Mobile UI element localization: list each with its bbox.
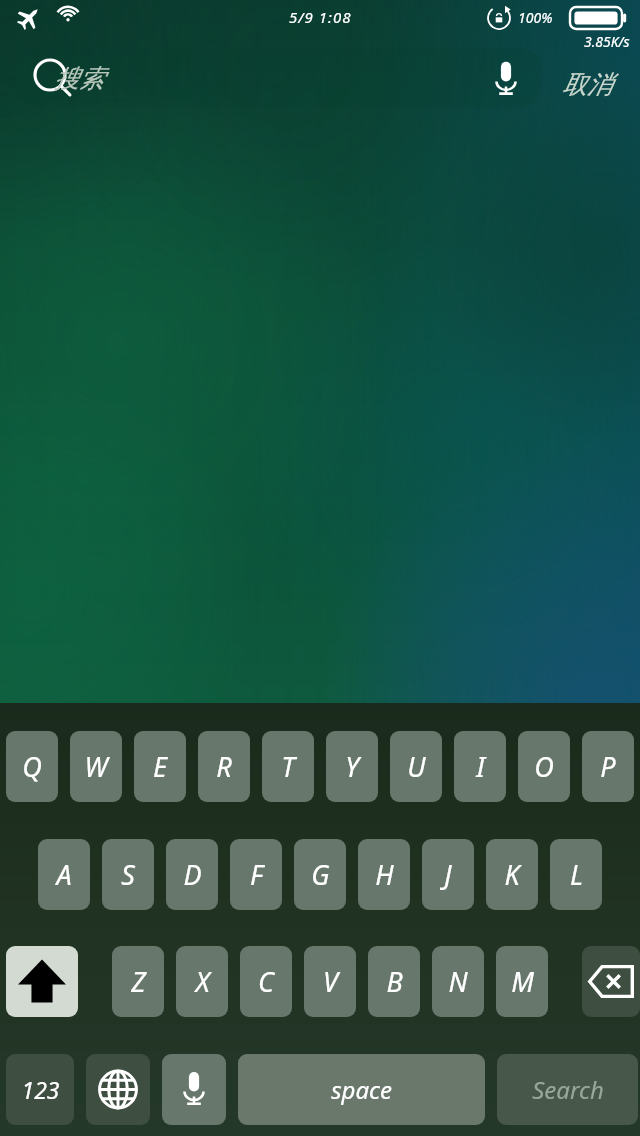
staticText: P [600, 748, 616, 785]
staticText: Y [345, 748, 359, 785]
button[interactable]: L [550, 839, 602, 910]
staticText: A [56, 856, 72, 893]
button[interactable]: Y [326, 731, 378, 802]
staticText: B [386, 963, 403, 1000]
staticText: X [195, 963, 210, 1000]
button[interactable]: D [166, 839, 218, 910]
staticText: M [511, 963, 534, 1000]
staticText: 123 [21, 1074, 60, 1105]
staticText: W [84, 748, 108, 785]
staticText: J [444, 856, 452, 893]
staticText: 3.85K/s [584, 32, 630, 51]
staticText: 搜索 [54, 63, 104, 94]
button[interactable]: A [38, 839, 90, 910]
button[interactable]: 搜索 [16, 48, 542, 108]
staticText: K [504, 856, 520, 893]
button[interactable]: G [294, 839, 346, 910]
button[interactable]: Z [112, 946, 164, 1017]
staticText: U [407, 748, 426, 785]
staticText: V [323, 963, 338, 1000]
staticText: E [153, 748, 167, 785]
staticText: D [183, 856, 202, 893]
staticText: Q [22, 748, 42, 785]
staticText: N [448, 963, 468, 1000]
staticText: H [375, 856, 394, 893]
button[interactable]: C [240, 946, 292, 1017]
staticText: R [216, 748, 232, 785]
button[interactable]: B [368, 946, 420, 1017]
button[interactable]: V [304, 946, 356, 1017]
button[interactable]: 取消 [542, 48, 632, 108]
staticText: Z [131, 963, 146, 1000]
button[interactable]: O [518, 731, 570, 802]
button[interactable]: Voice input [162, 1054, 226, 1125]
staticText: 100% [518, 8, 553, 27]
button[interactable]: P [582, 731, 634, 802]
staticText: space [331, 1073, 392, 1106]
button[interactable]: T [262, 731, 314, 802]
staticText: O [534, 748, 554, 785]
button[interactable]: W [70, 731, 122, 802]
staticText: I [476, 748, 485, 785]
staticText: 5/9 1:08 [289, 7, 352, 27]
button[interactable]: U [390, 731, 442, 802]
button[interactable]: space [238, 1054, 485, 1125]
button[interactable]: X [176, 946, 228, 1017]
staticText: G [311, 856, 330, 893]
button[interactable]: J [422, 839, 474, 910]
staticText: 取消 [562, 69, 612, 100]
button[interactable]: K [486, 839, 538, 910]
staticText: S [121, 856, 135, 893]
button[interactable]: Numbers and symbols [6, 1054, 74, 1125]
button[interactable]: H [358, 839, 410, 910]
button[interactable]: Backspace [582, 946, 640, 1017]
button[interactable]: M [496, 946, 548, 1017]
button[interactable]: S [102, 839, 154, 910]
button[interactable]: I [454, 731, 506, 802]
staticText: C [258, 963, 274, 1000]
button[interactable]: Search [497, 1054, 638, 1125]
button[interactable]: Shift [6, 946, 78, 1017]
staticText: T [281, 748, 295, 785]
button[interactable]: N [432, 946, 484, 1017]
button[interactable]: F [230, 839, 282, 910]
button[interactable]: Q [6, 731, 58, 802]
button[interactable]: R [198, 731, 250, 802]
staticText: F [250, 856, 263, 893]
staticText: L [570, 856, 583, 893]
button[interactable]: E [134, 731, 186, 802]
button[interactable]: Change language [86, 1054, 150, 1125]
staticText: Search [532, 1073, 604, 1106]
